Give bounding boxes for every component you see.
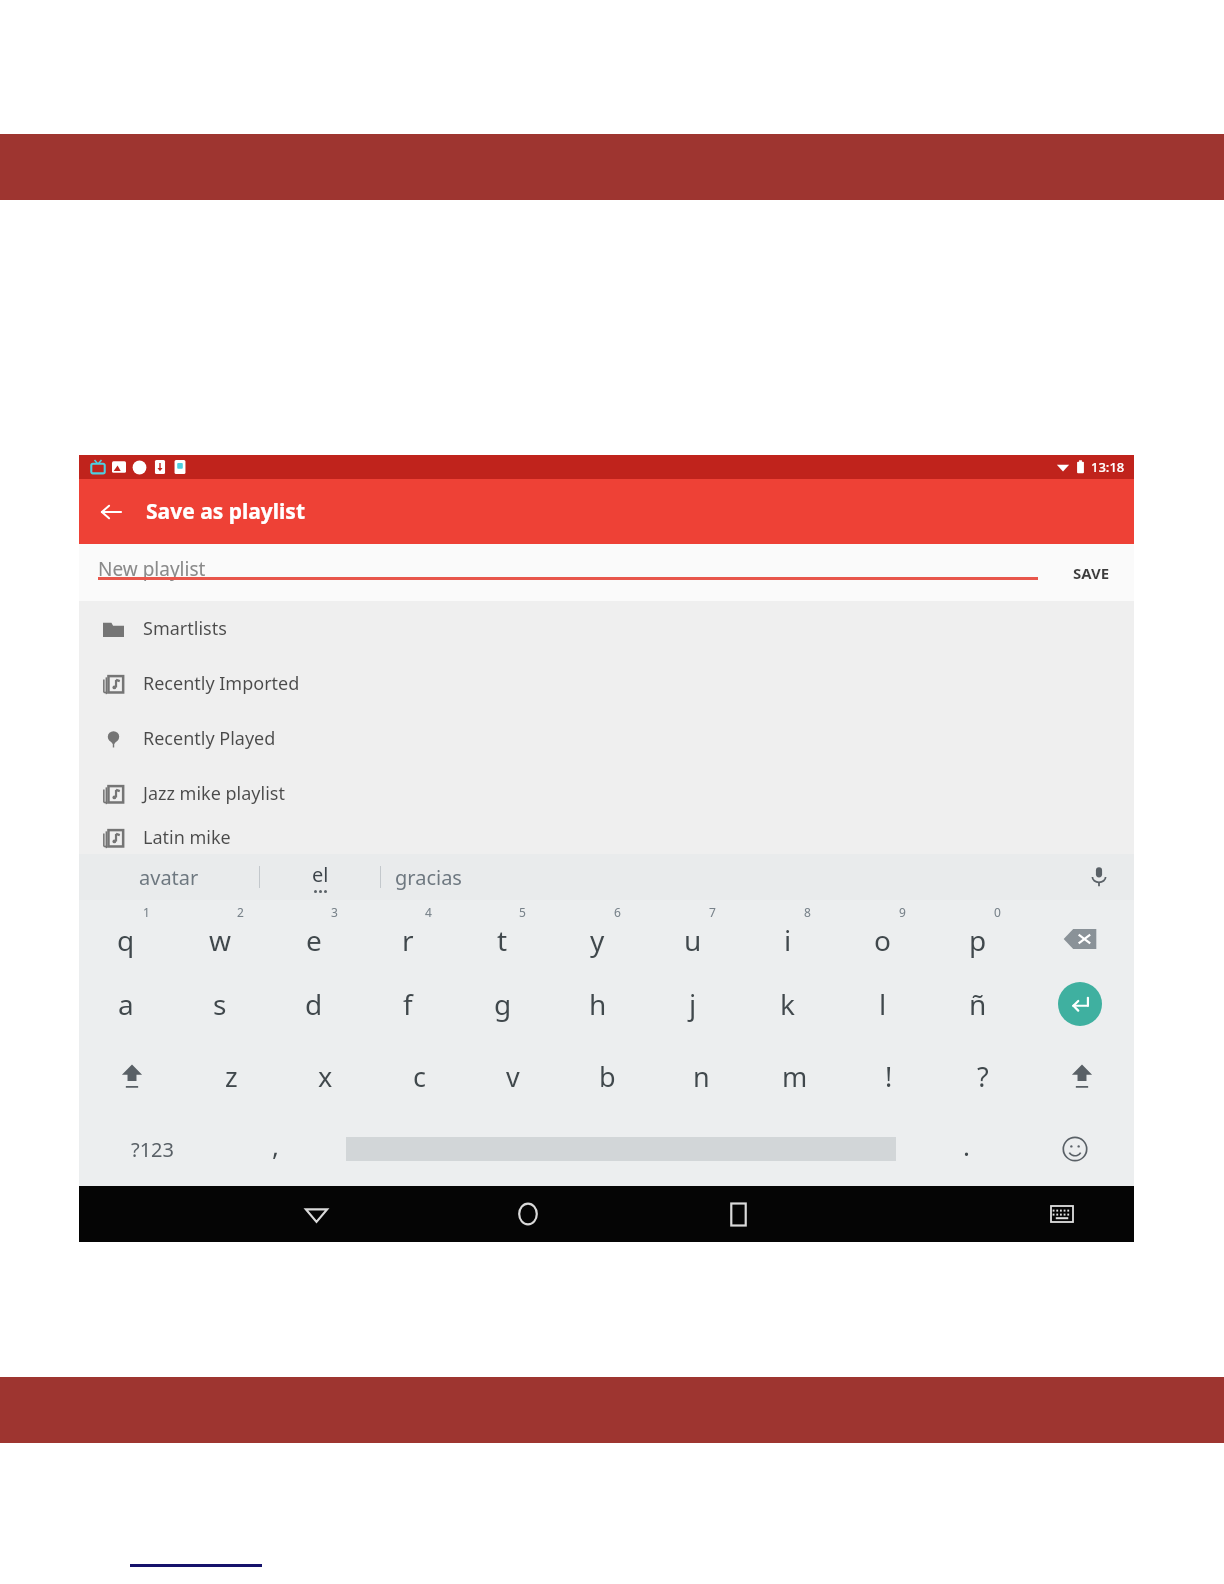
button[interactable]: Jazz mike playlist — [79, 766, 1134, 821]
staticText: m — [782, 1058, 808, 1095]
staticText: Recently Played — [143, 726, 276, 751]
staticText: ?123 — [131, 1136, 174, 1163]
button[interactable]: l — [835, 968, 930, 1040]
button[interactable]: 3 — [267, 900, 361, 968]
button[interactable]: 5 — [455, 900, 550, 968]
button[interactable]: v — [466, 1040, 560, 1112]
button[interactable]: . — [916, 1112, 1016, 1186]
staticText: Latin mike — [143, 825, 231, 850]
button[interactable]: s — [173, 968, 267, 1040]
button[interactable]: b — [560, 1040, 654, 1112]
button[interactable]: ? — [936, 1040, 1030, 1112]
button[interactable]: ?123 — [79, 1112, 225, 1186]
staticText: o — [874, 921, 891, 959]
button[interactable]: Back — [87, 488, 135, 536]
staticText: 6 — [614, 904, 621, 920]
button[interactable]: j — [645, 968, 740, 1040]
button[interactable]: SAVE — [1067, 557, 1116, 589]
staticText: z — [225, 1058, 238, 1095]
button[interactable]: a — [79, 968, 173, 1040]
staticText: 7 — [709, 904, 716, 920]
button[interactable]: Enter — [1025, 968, 1134, 1040]
button[interactable]: ñ — [930, 968, 1025, 1040]
staticText: v — [506, 1058, 520, 1095]
staticText: 8 — [804, 904, 811, 920]
button[interactable]: n — [654, 1040, 748, 1112]
button[interactable]: h — [550, 968, 645, 1040]
staticText: y — [590, 921, 605, 959]
staticText: New playlist — [98, 556, 206, 582]
button[interactable]: Backspace — [1025, 900, 1134, 968]
staticText: 2 — [237, 904, 244, 920]
button[interactable]: Home — [422, 1186, 633, 1242]
button[interactable]: Space — [325, 1112, 916, 1186]
staticText: ñ — [969, 985, 987, 1023]
button[interactable]: Shift — [79, 1040, 184, 1112]
staticText: Smartlists — [143, 616, 227, 641]
staticText: Jazz mike playlist — [143, 781, 285, 806]
staticText: e — [306, 921, 322, 959]
staticText: q — [117, 921, 135, 959]
button[interactable]: 8 — [740, 900, 835, 968]
button[interactable]: Back — [211, 1186, 422, 1242]
staticText: . — [963, 1128, 970, 1163]
button[interactable]: Keyboard — [989, 1186, 1134, 1242]
staticText: , — [272, 1128, 279, 1163]
staticText: SAVE — [1073, 563, 1110, 583]
staticText: g — [494, 985, 512, 1023]
button[interactable]: d — [267, 968, 361, 1040]
button[interactable]: c — [372, 1040, 466, 1112]
staticText: 4 — [425, 904, 432, 920]
button[interactable]: z — [184, 1040, 278, 1112]
button[interactable]: 9 — [835, 900, 930, 968]
staticText: gracias — [395, 864, 462, 891]
button[interactable]: Recently Played — [79, 711, 1134, 766]
button[interactable]: 4 — [361, 900, 455, 968]
staticText: s — [213, 985, 227, 1023]
button[interactable]: g — [455, 968, 550, 1040]
staticText: 5 — [519, 904, 526, 920]
staticText: h — [589, 985, 607, 1023]
button[interactable]: m — [748, 1040, 842, 1112]
button[interactable]: 6 — [550, 900, 645, 968]
button[interactable]: avatar — [79, 854, 259, 900]
staticText: 0 — [994, 904, 1001, 920]
staticText: j — [689, 985, 697, 1023]
button[interactable]: k — [740, 968, 835, 1040]
staticText: Recently Imported — [143, 671, 300, 696]
button[interactable]: 1 — [79, 900, 173, 968]
button[interactable]: 0 — [930, 900, 1025, 968]
staticText: i — [784, 921, 792, 959]
button[interactable]: ! — [842, 1040, 936, 1112]
staticText: k — [780, 985, 795, 1023]
button[interactable]: gracias — [381, 854, 581, 900]
staticText: u — [684, 921, 702, 959]
staticText: 13:18 — [1091, 458, 1125, 476]
button[interactable]: 2 — [173, 900, 267, 968]
staticText: a — [118, 985, 134, 1023]
button[interactable]: Latin mike — [79, 821, 1134, 854]
staticText: ? — [977, 1058, 989, 1095]
staticText: Save as playlist — [146, 497, 306, 526]
staticText: p — [969, 921, 987, 959]
staticText: avatar — [139, 864, 199, 891]
button[interactable]: x — [278, 1040, 372, 1112]
staticText: b — [599, 1058, 616, 1095]
staticText: w — [209, 921, 232, 959]
button[interactable]: New playlist — [98, 560, 1038, 586]
button[interactable]: Smartlists — [79, 601, 1134, 656]
button[interactable]: , — [225, 1112, 325, 1186]
button[interactable]: f — [361, 968, 455, 1040]
staticText: n — [693, 1058, 710, 1095]
button[interactable]: Emoji — [1016, 1112, 1134, 1186]
button[interactable]: 7 — [645, 900, 740, 968]
staticText: 3 — [331, 904, 338, 920]
button[interactable]: Recently Imported — [79, 656, 1134, 711]
staticText: l — [879, 985, 887, 1023]
staticText: r — [402, 921, 414, 959]
staticText: d — [305, 985, 323, 1023]
button[interactable]: Recents — [633, 1186, 844, 1242]
button[interactable]: Shift — [1030, 1040, 1134, 1112]
button[interactable]: el — [260, 854, 380, 900]
button[interactable]: Voice input — [1082, 860, 1116, 894]
